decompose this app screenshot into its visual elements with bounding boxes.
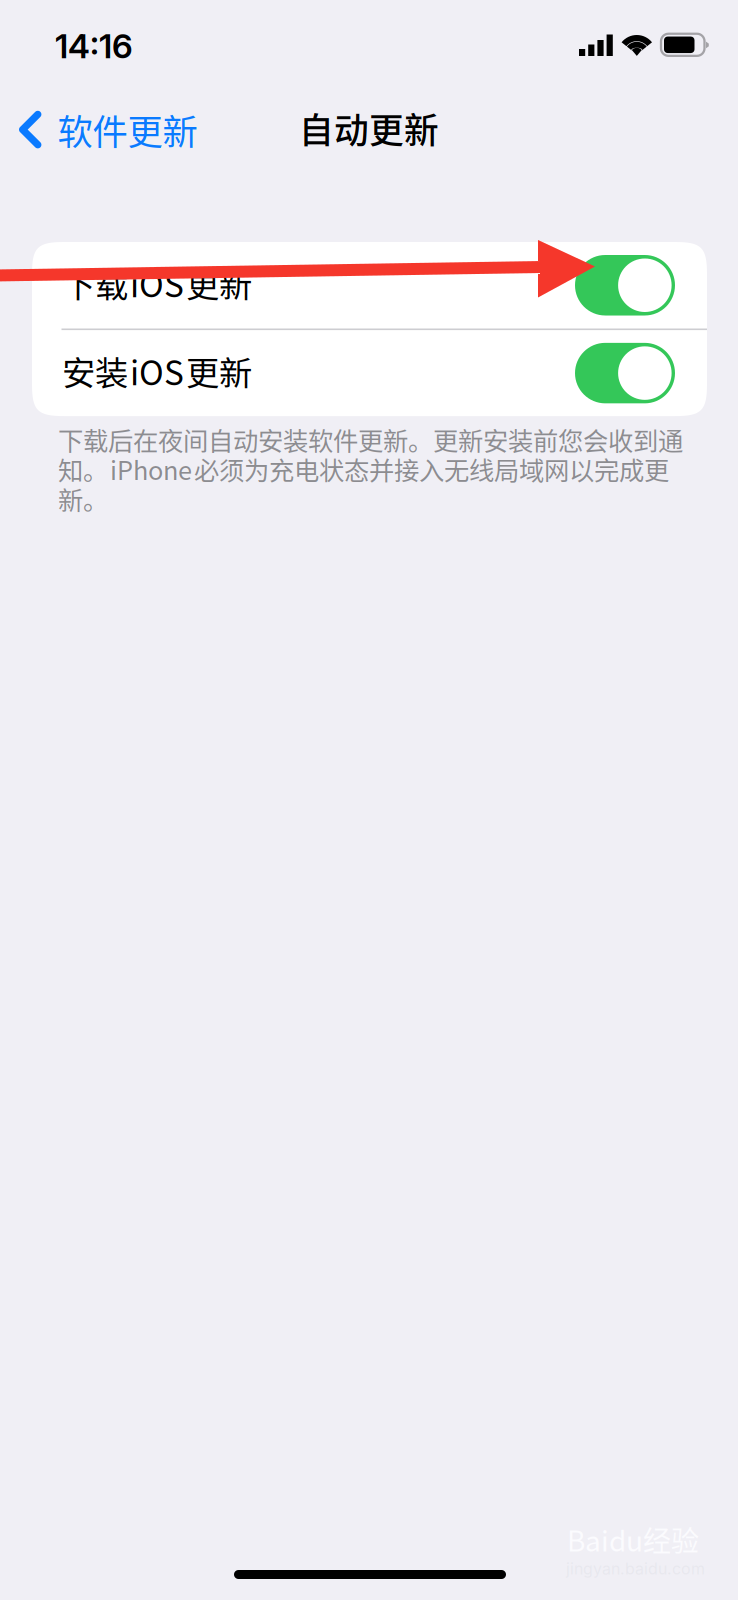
button[interactable]: 下载 iOS 更新 [32, 242, 707, 328]
staticText: 下载 iOS 更新 [62, 259, 252, 307]
staticText: 安装 iOS 更新 [62, 346, 252, 395]
staticText: 软件更新 [57, 104, 197, 155]
staticText: 下载后在夜间自动安装软件更新。更新安装前您会收到通 [58, 421, 683, 458]
staticText: 知。 iPhone 必须为充电状态并接入无线局域网以完成更 [58, 451, 669, 487]
staticText: 自动更新 [299, 103, 439, 153]
button[interactable]: 软件更新 [19, 98, 197, 161]
button[interactable]: 安装 iOS 更新 [32, 330, 707, 416]
staticText: Baidu经验 [567, 1519, 699, 1559]
button[interactable]: 开关 [575, 255, 675, 315]
button[interactable]: 开关 [575, 343, 675, 403]
staticText: 新。 [58, 480, 108, 517]
staticText: 14:16 [55, 26, 133, 66]
